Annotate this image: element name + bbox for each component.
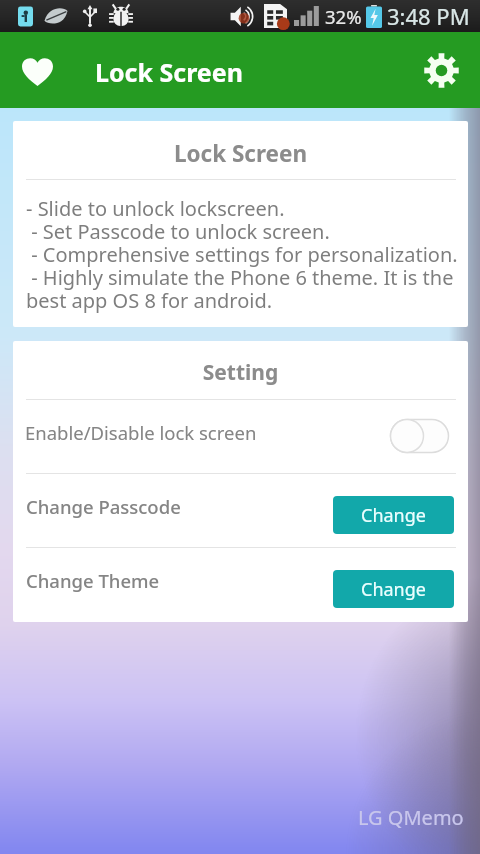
staticText: Change	[361, 503, 426, 528]
staticText: Change Theme	[26, 568, 160, 593]
button[interactable]: Favorite	[14, 47, 60, 93]
staticText: 32%	[325, 4, 362, 29]
button[interactable]: Change	[333, 570, 454, 608]
staticText: - Slide to unlock lockscreen. - Set Pass…	[26, 195, 468, 314]
button[interactable]: Settings	[418, 47, 464, 93]
staticText: Lock Screen	[95, 55, 243, 89]
staticText: Lock Screen	[13, 138, 468, 169]
button[interactable]: Change	[333, 496, 454, 534]
staticText: Change Passcode	[26, 494, 181, 519]
staticText: Setting	[13, 358, 468, 387]
staticText: Enable/Disable lock screen	[25, 420, 257, 445]
staticText: 3:48 PM	[387, 1, 470, 31]
button[interactable]: Enable/Disable lock screen	[13, 396, 468, 469]
staticText: LG QMemo	[358, 804, 464, 831]
staticText: Change	[361, 577, 426, 602]
